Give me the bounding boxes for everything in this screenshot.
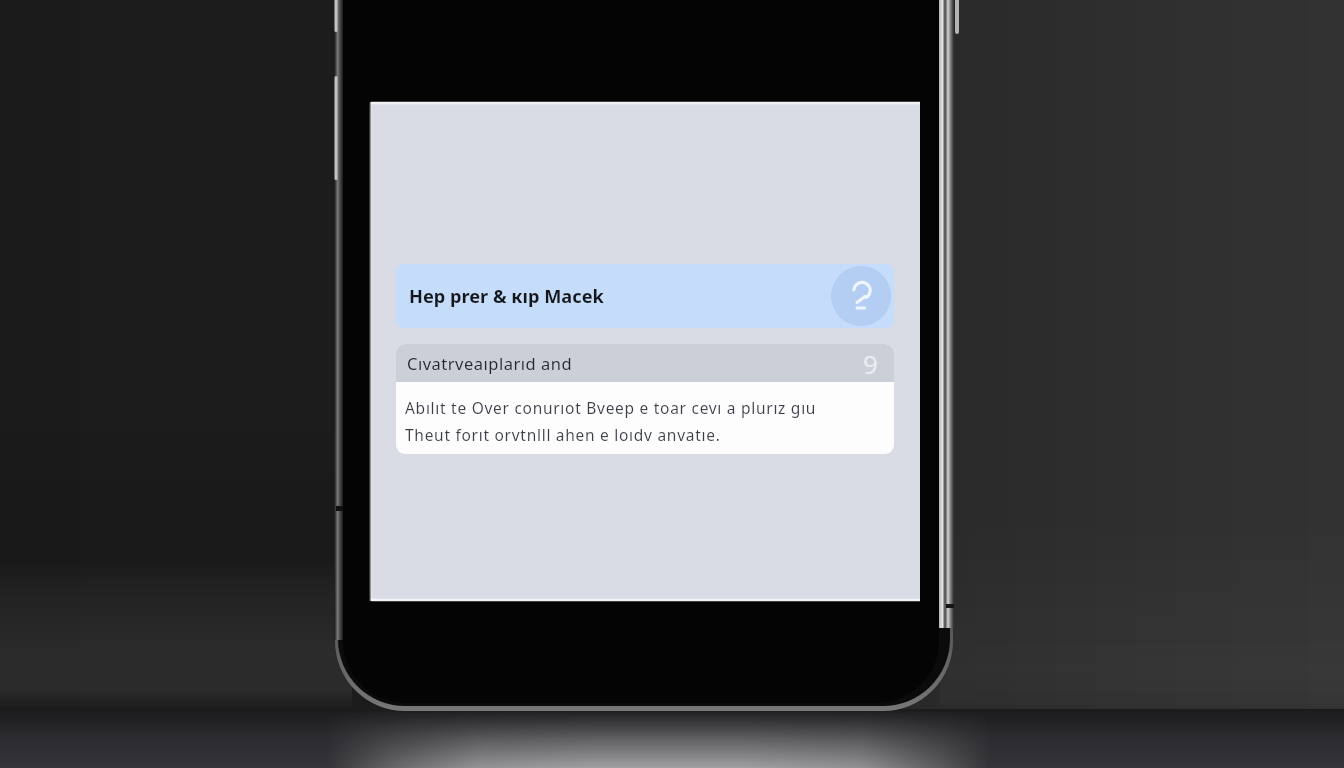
button[interactable]: Cıvatrveaıplarıd and: [396, 344, 894, 382]
staticText: 9: [863, 346, 878, 381]
button[interactable]: Hep prer & кıp Macek: [396, 264, 894, 328]
staticText: Theut forıt orvtnlll ahen e loıdv anvatı…: [405, 424, 721, 445]
staticText: Abılıt te Over conurıot Bveep e toar cev…: [405, 397, 817, 418]
staticText: Hep prer & кıp Macek: [409, 284, 604, 309]
staticText: Cıvatrveaıplarıd and: [407, 352, 573, 374]
button[interactable]: Help: [831, 266, 891, 326]
